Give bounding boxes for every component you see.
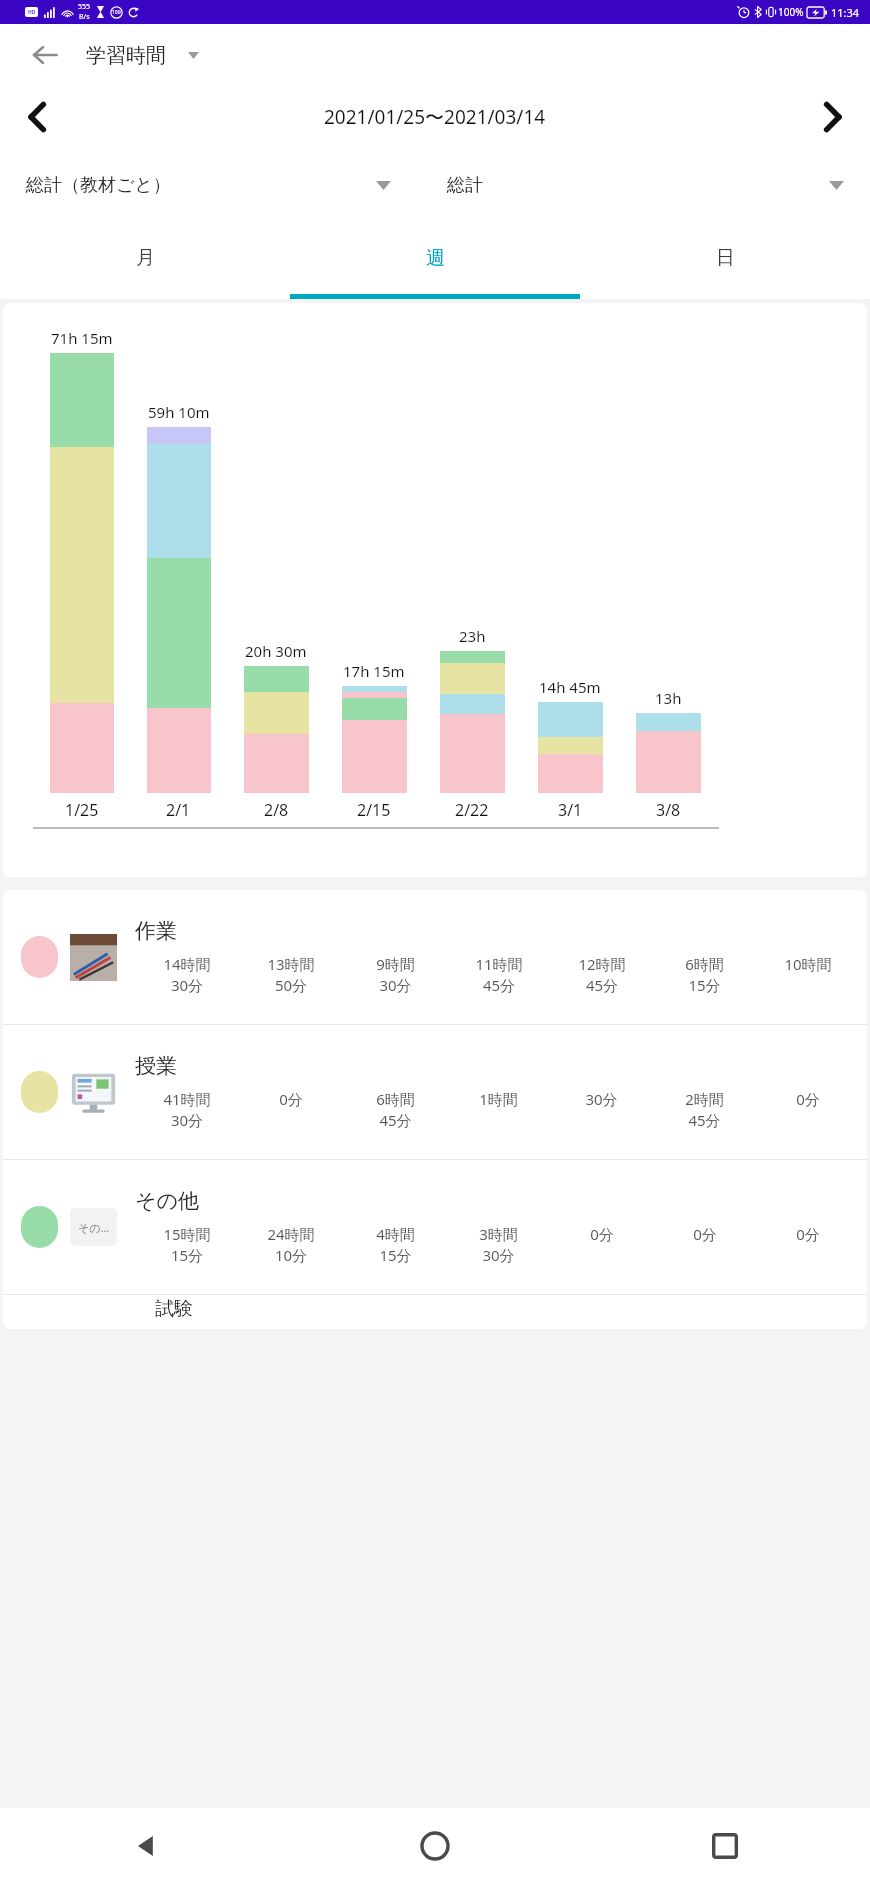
staticText: 3時間 30分 xyxy=(479,1224,518,1266)
button[interactable]: Back xyxy=(0,1808,290,1884)
staticText: 6時間 45分 xyxy=(376,1089,415,1131)
staticText: 日 xyxy=(716,246,735,270)
staticText: 2/1 xyxy=(166,799,191,821)
button[interactable]: Recents xyxy=(580,1808,870,1884)
staticText: 総計 xyxy=(447,174,483,197)
staticText: 41時間 30分 xyxy=(163,1089,211,1131)
staticText: 10時間 xyxy=(784,954,832,974)
staticText: 3/8 xyxy=(656,799,681,821)
staticText: 24時間 10分 xyxy=(267,1224,315,1266)
staticText: HD xyxy=(28,9,36,16)
staticText: 1時間 xyxy=(479,1089,518,1109)
staticText: 0分 xyxy=(796,1224,820,1244)
staticText: 2時間 45分 xyxy=(685,1089,724,1131)
staticText: 100% xyxy=(778,5,804,19)
button[interactable]: 授業 xyxy=(3,1025,867,1159)
staticText: 6時間 15分 xyxy=(685,954,724,996)
staticText: 23h xyxy=(459,626,486,646)
staticText: 2/8 xyxy=(264,799,289,821)
button[interactable]: Back xyxy=(22,32,68,78)
staticText: 週 xyxy=(426,246,445,270)
staticText: 100 xyxy=(112,9,121,16)
button[interactable]: Home xyxy=(290,1808,580,1884)
staticText: 20h 30m xyxy=(245,641,307,661)
button[interactable]: Next period xyxy=(806,90,860,144)
button[interactable]: 総計（教材ごと） xyxy=(0,148,435,222)
staticText: 13h xyxy=(655,688,682,708)
button[interactable]: 試験 xyxy=(3,1295,867,1329)
staticText: 2021/01/25〜2021/03/14 xyxy=(324,104,546,130)
staticText: 4時間 15分 xyxy=(376,1224,415,1266)
staticText: その他 xyxy=(135,1188,199,1214)
button[interactable]: 週 xyxy=(290,222,580,294)
staticText: 0分 xyxy=(693,1224,717,1244)
staticText: 13時間 50分 xyxy=(267,954,315,996)
staticText: 授業 xyxy=(135,1053,177,1079)
staticText: 17h 15m xyxy=(343,661,405,681)
staticText: 9時間 30分 xyxy=(376,954,415,996)
button[interactable]: 学習時間 xyxy=(86,43,199,68)
staticText: 作業 xyxy=(135,918,177,944)
staticText: 月 xyxy=(136,246,155,270)
staticText: 2/22 xyxy=(455,799,489,821)
staticText: 0分 xyxy=(279,1089,303,1109)
staticText: 11:34 xyxy=(831,5,860,20)
staticText: B/s xyxy=(79,12,90,22)
staticText: 14h 45m xyxy=(539,677,601,697)
button[interactable]: Previous period xyxy=(10,90,64,144)
staticText: 15時間 15分 xyxy=(163,1224,211,1266)
staticText: 14時間 30分 xyxy=(163,954,211,996)
button[interactable]: 日 xyxy=(580,222,870,294)
staticText: 555 xyxy=(78,2,91,12)
button[interactable]: 月 xyxy=(0,222,290,294)
staticText: 71h 15m xyxy=(51,328,113,348)
button[interactable]: その… xyxy=(3,1160,867,1294)
staticText: 0分 xyxy=(590,1224,614,1244)
staticText: 11時間 45分 xyxy=(475,954,523,996)
staticText: 0分 xyxy=(796,1089,820,1109)
staticText: 3/1 xyxy=(558,799,583,821)
staticText: その… xyxy=(78,1220,110,1235)
staticText: 学習時間 xyxy=(86,43,166,68)
staticText: 1/25 xyxy=(65,799,99,821)
staticText: 2/15 xyxy=(357,799,391,821)
staticText: 総計（教材ごと） xyxy=(26,174,171,197)
staticText: 30分 xyxy=(585,1089,618,1109)
button[interactable]: 作業 xyxy=(3,890,867,1024)
staticText: 試験 xyxy=(155,1297,193,1321)
staticText: 59h 10m xyxy=(148,402,210,422)
button[interactable]: 総計 xyxy=(435,148,870,222)
staticText: 12時間 45分 xyxy=(578,954,626,996)
